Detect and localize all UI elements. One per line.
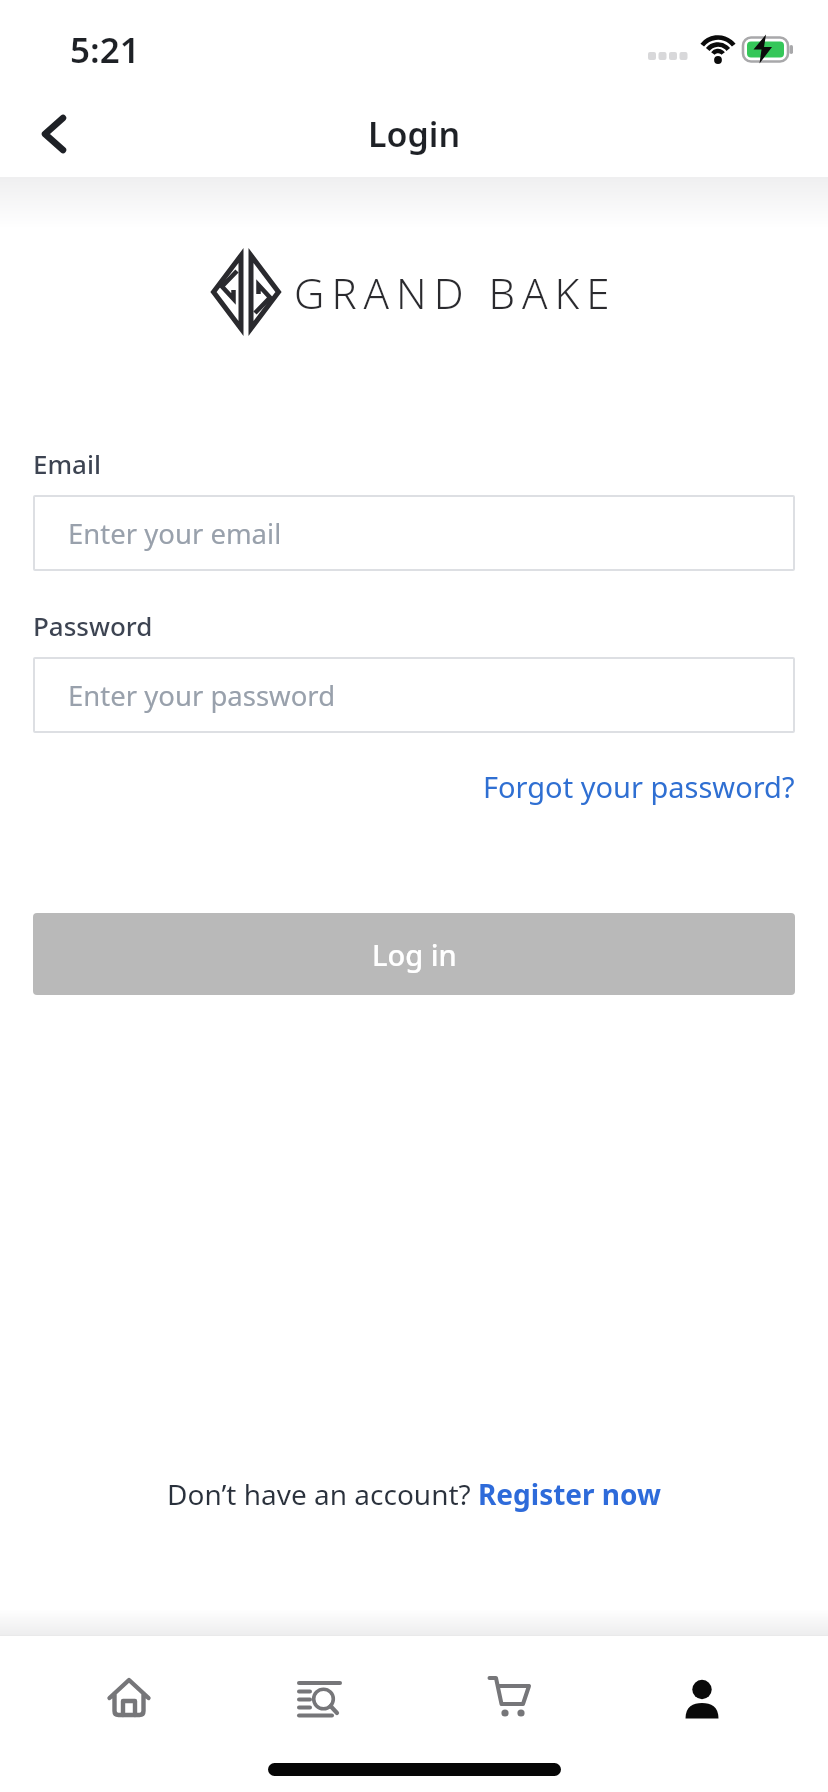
staticText: Login	[368, 111, 461, 157]
button[interactable]: Register now	[478, 1475, 661, 1513]
staticText: Log in	[372, 935, 457, 974]
staticText: Password	[33, 608, 153, 643]
staticText: GRAND BAKE	[294, 264, 617, 321]
button[interactable]: Enter your password	[33, 657, 795, 733]
staticText: 5:21	[70, 26, 140, 74]
button[interactable]: Forgot your password?	[483, 767, 795, 806]
button[interactable]	[297, 1675, 343, 1721]
button[interactable]	[106, 1675, 152, 1721]
button[interactable]: Enter your email	[33, 495, 795, 571]
staticText: Enter your password	[68, 677, 336, 714]
button[interactable]	[679, 1675, 725, 1721]
button[interactable]	[488, 1675, 534, 1721]
staticText: Don’t have an account?	[167, 1475, 478, 1513]
button[interactable]: Log in	[33, 913, 795, 995]
button[interactable]	[28, 108, 80, 160]
staticText: Email	[33, 446, 102, 481]
staticText: Enter your email	[68, 515, 282, 552]
